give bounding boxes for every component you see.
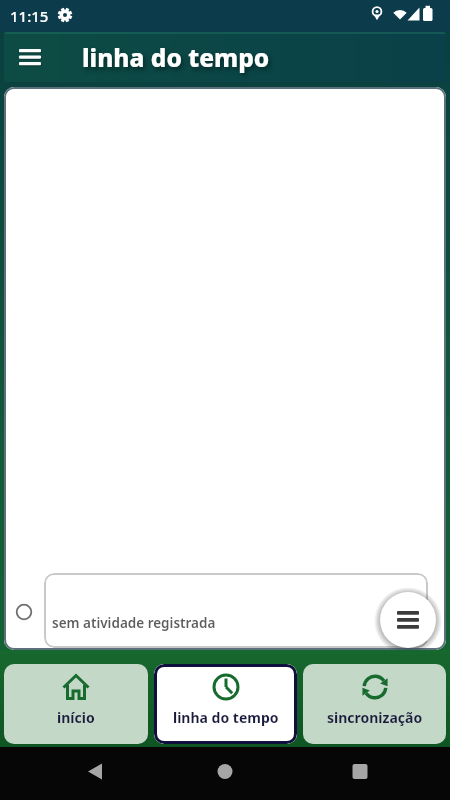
staticText: linha do tempo <box>173 708 279 727</box>
button[interactable]: sincronização <box>303 664 446 744</box>
staticText: início <box>57 708 95 727</box>
button[interactable]: sem atividade registrada <box>44 573 428 648</box>
button[interactable]: início <box>4 664 148 744</box>
staticText: linha do tempo <box>82 41 270 74</box>
button[interactable]: linha do tempo <box>154 664 297 744</box>
button[interactable] <box>380 592 436 648</box>
staticText: sem atividade registrada <box>52 614 216 632</box>
button[interactable] <box>6 33 54 81</box>
staticText: 11:15 <box>10 6 49 26</box>
staticText: sincronização <box>327 708 423 727</box>
